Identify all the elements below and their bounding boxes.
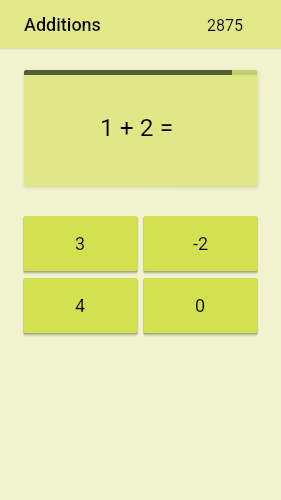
button[interactable]: 4 [24,278,137,333]
staticText: 3 [75,233,86,254]
button[interactable]: -2 [144,216,257,271]
staticText: 1 + 2 = [100,113,174,142]
other: Time remaining [24,70,257,75]
staticText: 2875 [207,16,243,35]
button[interactable]: 3 [24,216,137,271]
staticText: 0 [195,295,206,316]
staticText: -2 [193,233,209,254]
staticText: Additions [24,14,101,35]
button[interactable]: 0 [144,278,257,333]
staticText: 4 [75,295,86,316]
